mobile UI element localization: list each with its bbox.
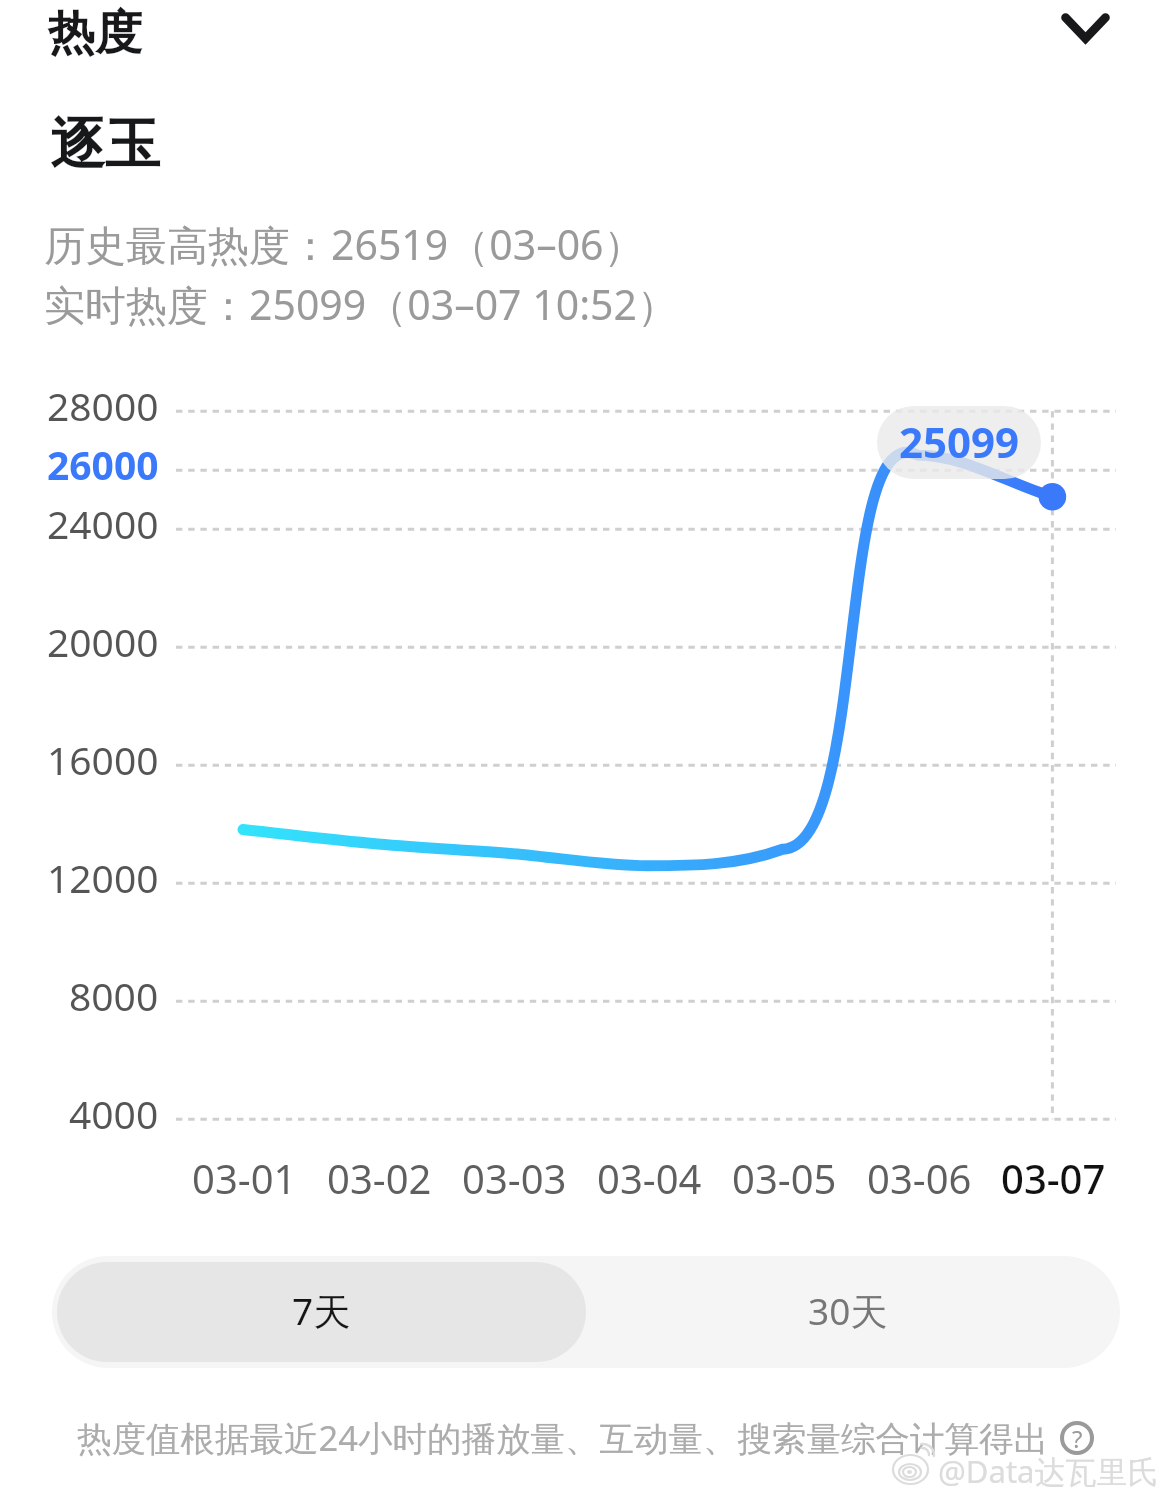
- staticText: 03-07: [1001, 1151, 1106, 1205]
- staticText: 历史最高热度：26519（03–06）: [44, 216, 645, 272]
- staticText: 28000: [47, 379, 159, 432]
- staticText: 实时热度：25099（03–07 10:52）: [44, 276, 679, 332]
- staticText: 03-06: [867, 1151, 972, 1205]
- staticText: 30天: [808, 1285, 888, 1336]
- staticText: 24000: [47, 497, 159, 550]
- button[interactable]: 7天: [57, 1262, 586, 1362]
- staticText: 12000: [47, 851, 159, 904]
- staticText: 03-04: [597, 1151, 702, 1205]
- button[interactable]: 30天: [586, 1262, 1115, 1362]
- button[interactable]: Collapse: [1035, 0, 1136, 56]
- staticText: 03-02: [327, 1151, 432, 1205]
- staticText: 7天: [292, 1285, 351, 1336]
- staticText: 26000: [47, 438, 159, 491]
- staticText: 03-01: [192, 1151, 297, 1205]
- staticText: 8000: [69, 969, 159, 1022]
- staticText: @Data达瓦里氏: [938, 1450, 1159, 1492]
- staticText: 热度值根据最近24小时的播放量、互动量、搜索量综合计算得出: [77, 1414, 1048, 1461]
- staticText: 25099: [899, 413, 1020, 470]
- button[interactable]: Help: [1060, 1421, 1094, 1455]
- staticText: 逐玉: [50, 110, 160, 179]
- staticText: 20000: [47, 615, 159, 668]
- staticText: ?: [1072, 1422, 1083, 1455]
- staticText: 16000: [47, 733, 159, 786]
- staticText: 03-03: [462, 1151, 567, 1205]
- staticText: 03-05: [732, 1151, 837, 1205]
- staticText: 4000: [69, 1087, 159, 1140]
- staticText: 热度: [48, 4, 142, 63]
